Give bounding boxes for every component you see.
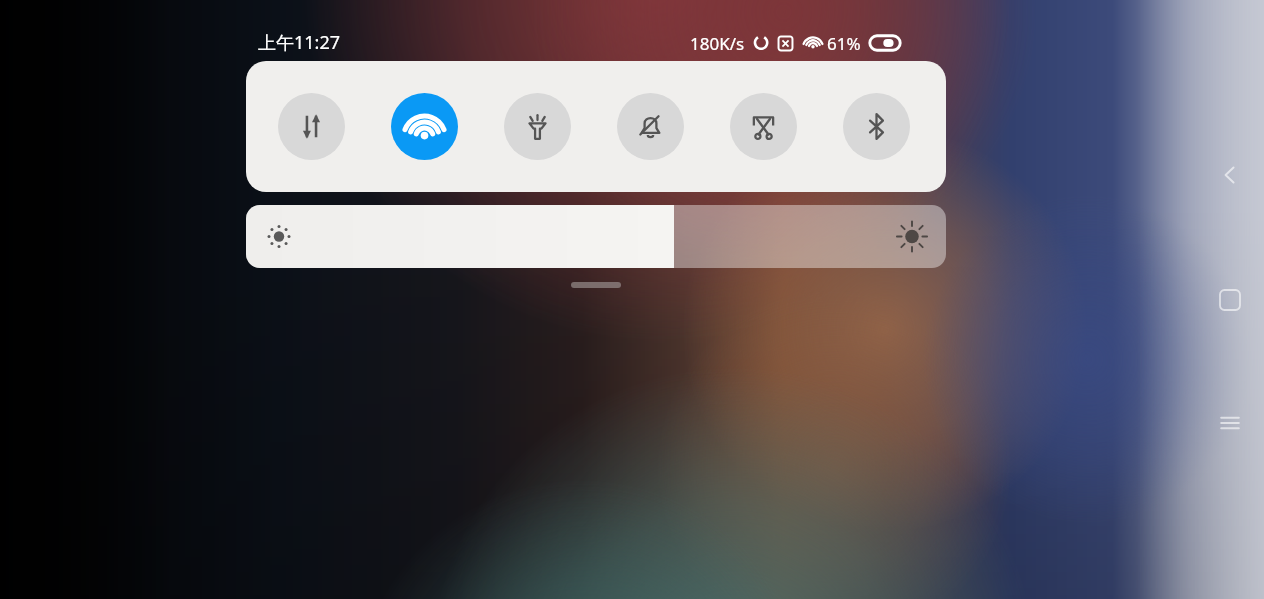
button[interactable]: Back	[1210, 155, 1250, 195]
button[interactable]: Silent mode	[617, 93, 684, 160]
staticText: 61%	[827, 32, 861, 55]
button[interactable]: Bluetooth	[843, 93, 910, 160]
button[interactable]: Collapse panel	[571, 282, 621, 288]
button[interactable]: Recent apps	[1210, 403, 1250, 443]
staticText: 上午11:27	[258, 30, 341, 55]
button[interactable]: Wi-Fi	[391, 93, 458, 160]
button[interactable]: Screenshot	[730, 93, 797, 160]
button[interactable]: Brightness	[246, 205, 946, 268]
button[interactable]: Home	[1210, 280, 1250, 320]
staticText: 180K/s	[690, 32, 745, 55]
button[interactable]: Flashlight	[504, 93, 571, 160]
button[interactable]: Mobile data	[278, 93, 345, 160]
